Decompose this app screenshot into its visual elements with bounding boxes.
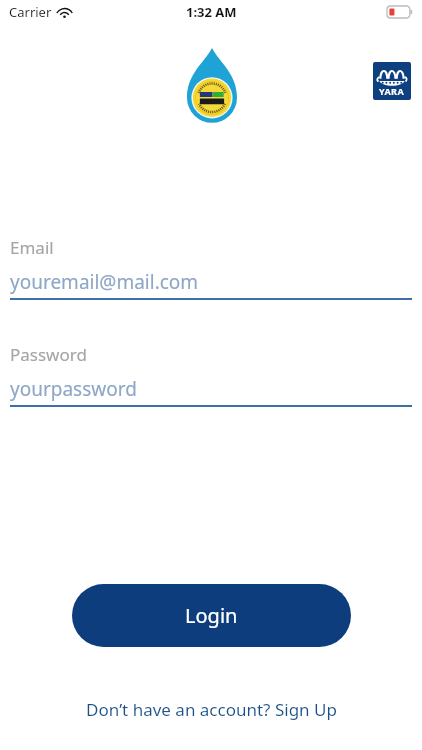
staticText: Email (10, 236, 54, 259)
staticText: youremail@mail.com (10, 269, 199, 295)
staticText: YARA (379, 85, 405, 97)
other: Yara logo (373, 62, 411, 100)
button[interactable]: yourpassword (0, 376, 422, 407)
button[interactable]: Login (72, 584, 351, 647)
staticText: Password (10, 343, 87, 366)
other: YaraVita Procote logo (187, 48, 237, 124)
staticText: 1:32 AM (186, 3, 237, 21)
staticText: Login (185, 602, 238, 629)
button[interactable]: Don’t have an account? Sign Up (76, 694, 347, 725)
staticText: Carrier (9, 3, 52, 21)
button[interactable]: youremail@mail.com (0, 269, 422, 300)
staticText: yourpassword (10, 376, 137, 402)
staticText: Don’t have an account? Sign Up (86, 698, 337, 721)
